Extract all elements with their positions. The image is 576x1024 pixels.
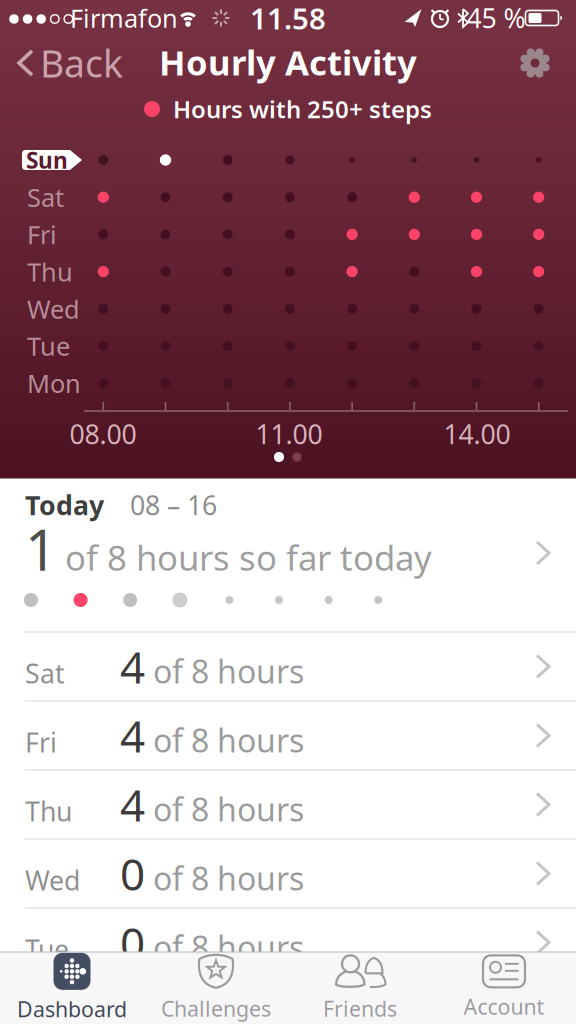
staticText: 4 (120, 706, 145, 765)
staticText: of 8 hours (153, 926, 304, 968)
button[interactable]: 1 (0, 521, 576, 577)
button[interactable]: Wed (0, 839, 576, 908)
staticText: of 8 hours (153, 650, 304, 692)
staticText: Account (463, 992, 544, 1021)
staticText: Thu (25, 793, 72, 829)
staticText: Sat (25, 655, 65, 691)
staticText: Tue (25, 931, 69, 967)
staticText: of 8 hours (153, 857, 304, 899)
button[interactable]: Settings (513, 41, 557, 85)
staticText: 0 (120, 844, 145, 903)
staticText: of 8 hours (153, 788, 304, 830)
staticText: 45 % (466, 0, 525, 36)
button[interactable]: Account (432, 952, 576, 1024)
staticText: Fri (27, 218, 57, 251)
staticText: Hours with 250+ steps (173, 93, 432, 125)
staticText: 4 (120, 637, 145, 696)
staticText: Hourly Activity (159, 39, 417, 85)
staticText: Today (25, 487, 104, 523)
staticText: 14.00 (443, 416, 510, 452)
staticText: Friends (323, 994, 397, 1023)
staticText: Firmafon (70, 1, 178, 35)
staticText: Wed (27, 292, 80, 326)
staticText: Back (40, 38, 123, 88)
staticText: Tue (27, 329, 70, 363)
staticText: Sun (26, 145, 68, 175)
staticText: of 8 hours so far today (65, 534, 432, 580)
button[interactable]: Back (16, 38, 126, 88)
button[interactable]: Sat (0, 632, 576, 701)
staticText: Sat (27, 180, 64, 214)
button[interactable]: Tue (0, 908, 576, 977)
button[interactable]: Fri (0, 701, 576, 770)
staticText: of 8 hours (153, 719, 304, 761)
button[interactable]: Dashboard (0, 952, 144, 1024)
staticText: 1 (25, 512, 57, 586)
staticText: Fri (25, 724, 57, 760)
staticText: 11.58 (250, 0, 326, 37)
staticText: 08.00 (69, 416, 136, 452)
staticText: Dashboard (17, 995, 127, 1023)
button[interactable]: Friends (288, 952, 432, 1024)
staticText: Mon (27, 366, 81, 400)
staticText: 08 – 16 (130, 487, 217, 523)
button[interactable]: Challenges (144, 952, 288, 1024)
staticText: 4 (120, 775, 145, 834)
staticText: Wed (25, 862, 80, 898)
staticText: 11.00 (255, 416, 322, 452)
staticText: 0 (120, 913, 145, 972)
button[interactable]: Thu (0, 770, 576, 839)
staticText: Thu (27, 255, 73, 288)
staticText: Challenges (161, 994, 271, 1023)
